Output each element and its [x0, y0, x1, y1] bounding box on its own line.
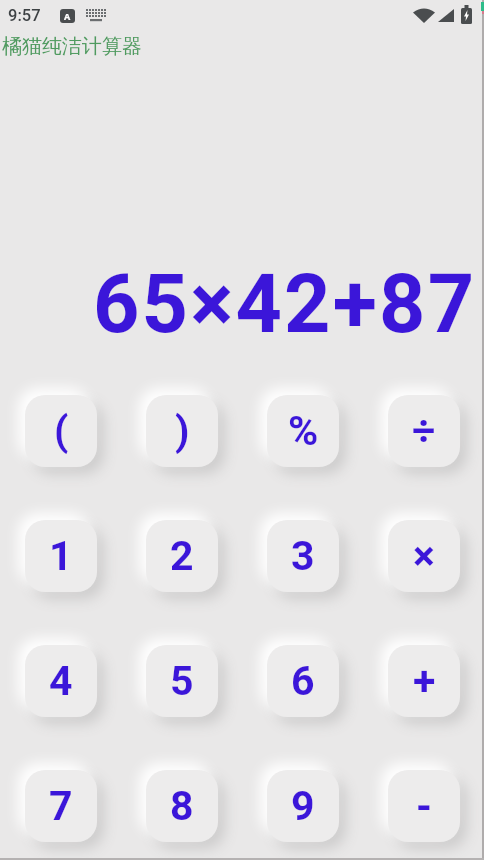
staticText: 9:57 [8, 6, 41, 25]
button[interactable]: 1 [25, 520, 97, 592]
staticText: 橘猫纯洁计算器 [2, 34, 142, 59]
button[interactable]: 3 [267, 520, 339, 592]
staticText: 4 [49, 657, 73, 705]
staticText: 7 [49, 782, 73, 830]
button[interactable]: 4 [25, 645, 97, 717]
staticText: 8 [170, 782, 194, 830]
staticText: × [413, 532, 435, 580]
button[interactable]: ) [146, 395, 218, 467]
button[interactable]: % [267, 395, 339, 467]
staticText: 1 [49, 532, 73, 580]
staticText: 65×42+87 [93, 257, 477, 352]
staticText: A [64, 10, 71, 22]
button[interactable]: ( [25, 395, 97, 467]
staticText: 3 [291, 532, 315, 580]
button[interactable]: 9 [267, 770, 339, 842]
button[interactable]: - [388, 770, 460, 842]
button[interactable]: ÷ [388, 395, 460, 467]
staticText: ) [175, 407, 190, 455]
staticText: ÷ [412, 407, 436, 455]
staticText: ( [54, 407, 69, 455]
staticText: + [413, 657, 436, 705]
button[interactable]: 6 [267, 645, 339, 717]
button[interactable]: 2 [146, 520, 218, 592]
button[interactable]: 8 [146, 770, 218, 842]
staticText: 9 [291, 782, 315, 830]
staticText: 2 [170, 532, 194, 580]
staticText: - [416, 782, 432, 830]
staticText: 6 [291, 657, 315, 705]
staticText: 5 [170, 657, 194, 705]
button[interactable]: × [388, 520, 460, 592]
button[interactable]: 5 [146, 645, 218, 717]
button[interactable]: 7 [25, 770, 97, 842]
button[interactable]: + [388, 645, 460, 717]
staticText: % [288, 407, 319, 455]
